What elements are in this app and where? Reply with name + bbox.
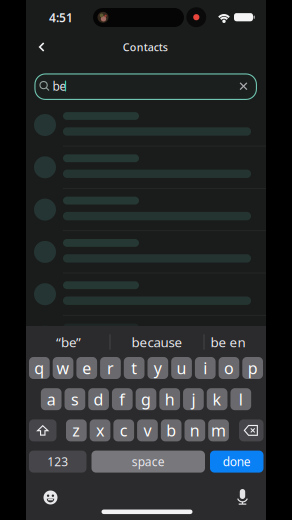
staticText: u bbox=[176, 357, 186, 379]
button[interactable]: q bbox=[29, 357, 50, 379]
button[interactable]: k bbox=[207, 388, 227, 410]
staticText: be en bbox=[210, 333, 245, 351]
button[interactable] bbox=[26, 231, 266, 273]
button[interactable]: w bbox=[53, 357, 73, 379]
staticText: because bbox=[131, 333, 182, 351]
button[interactable]: s bbox=[64, 388, 85, 410]
button[interactable]: u bbox=[171, 357, 192, 379]
staticText: n bbox=[190, 420, 200, 441]
button[interactable]: y bbox=[147, 357, 168, 379]
button[interactable] bbox=[29, 419, 56, 441]
button[interactable]: i bbox=[195, 357, 216, 379]
staticText: a bbox=[47, 389, 56, 410]
button[interactable]: o bbox=[219, 357, 239, 379]
button[interactable] bbox=[26, 104, 266, 146]
staticText: i bbox=[203, 357, 207, 379]
staticText: b bbox=[166, 420, 176, 441]
button[interactable]: because bbox=[112, 328, 202, 355]
button[interactable] bbox=[26, 273, 266, 315]
button[interactable] bbox=[236, 488, 249, 505]
staticText: x bbox=[96, 420, 104, 441]
button[interactable]: n bbox=[184, 419, 205, 441]
button[interactable]: a bbox=[41, 388, 62, 410]
staticText: c bbox=[120, 420, 128, 441]
staticText: q bbox=[34, 357, 44, 379]
staticText: t bbox=[131, 357, 137, 379]
staticText: done bbox=[223, 454, 251, 469]
button[interactable]: space bbox=[91, 451, 205, 473]
button[interactable]: f bbox=[112, 388, 133, 410]
staticText: r bbox=[107, 357, 114, 379]
staticText: k bbox=[213, 389, 222, 410]
staticText: 4:51 bbox=[49, 9, 73, 25]
button[interactable]: be en bbox=[199, 328, 257, 355]
staticText: z bbox=[72, 420, 80, 441]
button[interactable]: e bbox=[76, 357, 97, 379]
button[interactable]: c bbox=[113, 419, 134, 441]
button[interactable]: v bbox=[137, 419, 158, 441]
staticText: g bbox=[141, 389, 151, 410]
button[interactable] bbox=[26, 189, 266, 231]
staticText: space bbox=[132, 454, 165, 469]
staticText: m bbox=[211, 420, 226, 441]
button[interactable]: b bbox=[161, 419, 181, 441]
staticText: p bbox=[248, 357, 258, 379]
button[interactable] bbox=[239, 82, 248, 91]
button[interactable]: 123 bbox=[29, 451, 86, 473]
button[interactable]: p bbox=[242, 357, 263, 379]
staticText: l bbox=[239, 389, 243, 410]
button[interactable] bbox=[26, 146, 266, 189]
button[interactable] bbox=[43, 490, 57, 504]
button[interactable]: done bbox=[210, 451, 263, 473]
button[interactable] bbox=[26, 315, 266, 358]
staticText: 123 bbox=[47, 454, 68, 469]
button[interactable]: l bbox=[230, 388, 251, 410]
button[interactable]: r bbox=[100, 357, 121, 379]
button[interactable]: “be” bbox=[28, 328, 108, 355]
button[interactable]: x bbox=[90, 419, 110, 441]
button[interactable] bbox=[36, 41, 47, 52]
staticText: j bbox=[191, 389, 195, 410]
button[interactable] bbox=[35, 74, 256, 99]
staticText: w bbox=[56, 357, 69, 379]
staticText: s bbox=[71, 389, 79, 410]
staticText: v bbox=[143, 420, 151, 441]
staticText: e bbox=[82, 357, 91, 379]
staticText: o bbox=[224, 357, 234, 379]
button[interactable]: t bbox=[124, 357, 144, 379]
button[interactable] bbox=[239, 419, 263, 441]
staticText: h bbox=[165, 389, 175, 410]
button[interactable]: m bbox=[208, 419, 229, 441]
button[interactable]: g bbox=[136, 388, 156, 410]
button[interactable]: j bbox=[183, 388, 204, 410]
button[interactable]: h bbox=[159, 388, 180, 410]
staticText: f bbox=[119, 389, 125, 410]
staticText: Contacts bbox=[123, 40, 168, 54]
staticText: be bbox=[52, 78, 66, 94]
button[interactable]: d bbox=[88, 388, 109, 410]
staticText: “be” bbox=[56, 333, 81, 351]
staticText: d bbox=[94, 389, 104, 410]
button[interactable]: z bbox=[66, 419, 87, 441]
staticText: y bbox=[154, 357, 162, 379]
